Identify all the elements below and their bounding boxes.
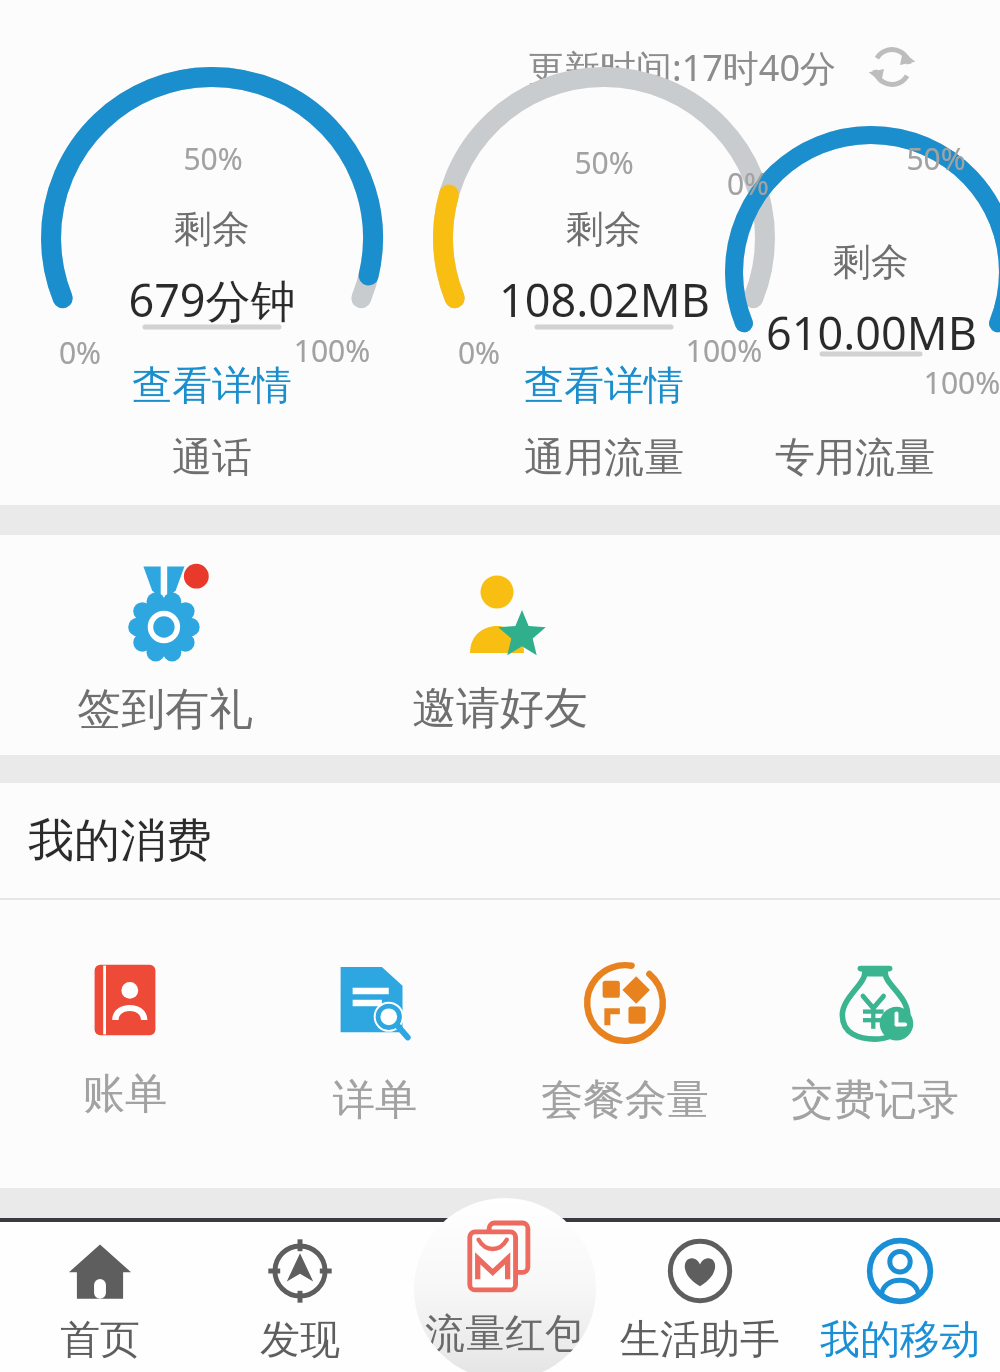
- staticText: 679分钟: [128, 269, 296, 330]
- button[interactable]: 签到有礼: [60, 560, 270, 737]
- staticText: 查看详情: [524, 360, 684, 410]
- staticText: 100%: [902, 362, 1000, 403]
- staticText: 首页: [60, 1314, 140, 1364]
- staticText: 我的消费: [28, 812, 212, 870]
- staticText: 更新时间:17时40分: [528, 43, 837, 92]
- staticText: 剩余: [833, 238, 909, 286]
- staticText: 610.00MB: [766, 302, 977, 363]
- staticText: 交费记录: [791, 1074, 959, 1127]
- button[interactable]: 剩余: [721, 238, 1000, 363]
- staticText: 通用流量: [454, 432, 754, 482]
- staticText: 100%: [272, 330, 392, 371]
- staticText: 剩余: [566, 205, 642, 253]
- staticText: 流量红包: [425, 1308, 585, 1358]
- button[interactable]: Refresh: [520, 30, 929, 104]
- staticText: 108.02MB: [499, 269, 710, 330]
- staticText: 0%: [20, 332, 140, 373]
- button[interactable]: 剩余: [62, 205, 362, 410]
- button[interactable]: 套餐余量: [500, 960, 750, 1127]
- staticText: 生活助手: [620, 1314, 780, 1364]
- staticText: 账单: [83, 1068, 167, 1121]
- staticText: 50%: [153, 138, 273, 179]
- button[interactable]: 流量红包: [414, 1198, 596, 1372]
- button[interactable]: 邀请好友: [395, 565, 605, 736]
- staticText: 我的移动: [820, 1314, 980, 1364]
- staticText: 查看详情: [132, 360, 292, 410]
- button[interactable]: 我的移动: [800, 1222, 1000, 1372]
- button[interactable]: 首页: [0, 1222, 200, 1372]
- button[interactable]: 交费记录: [750, 960, 1000, 1127]
- staticText: 剩余: [174, 205, 250, 253]
- staticText: 邀请好友: [412, 681, 588, 736]
- staticText: 50%: [876, 138, 996, 179]
- staticText: 0%: [688, 163, 808, 204]
- staticText: 签到有礼: [77, 682, 253, 737]
- staticText: 详单: [333, 1074, 417, 1127]
- staticText: 50%: [544, 142, 664, 183]
- staticText: 通话: [62, 432, 362, 482]
- staticText: 100%: [664, 330, 784, 371]
- button[interactable]: 生活助手: [600, 1222, 800, 1372]
- button[interactable]: 账单: [0, 960, 250, 1121]
- button[interactable]: 剩余: [454, 205, 754, 410]
- staticText: 发现: [260, 1314, 340, 1364]
- button[interactable]: 发现: [200, 1222, 400, 1372]
- staticText: 专用流量: [705, 432, 1000, 482]
- staticText: 0%: [419, 332, 539, 373]
- staticText: 套餐余量: [541, 1074, 709, 1127]
- button[interactable]: 详单: [250, 960, 500, 1127]
